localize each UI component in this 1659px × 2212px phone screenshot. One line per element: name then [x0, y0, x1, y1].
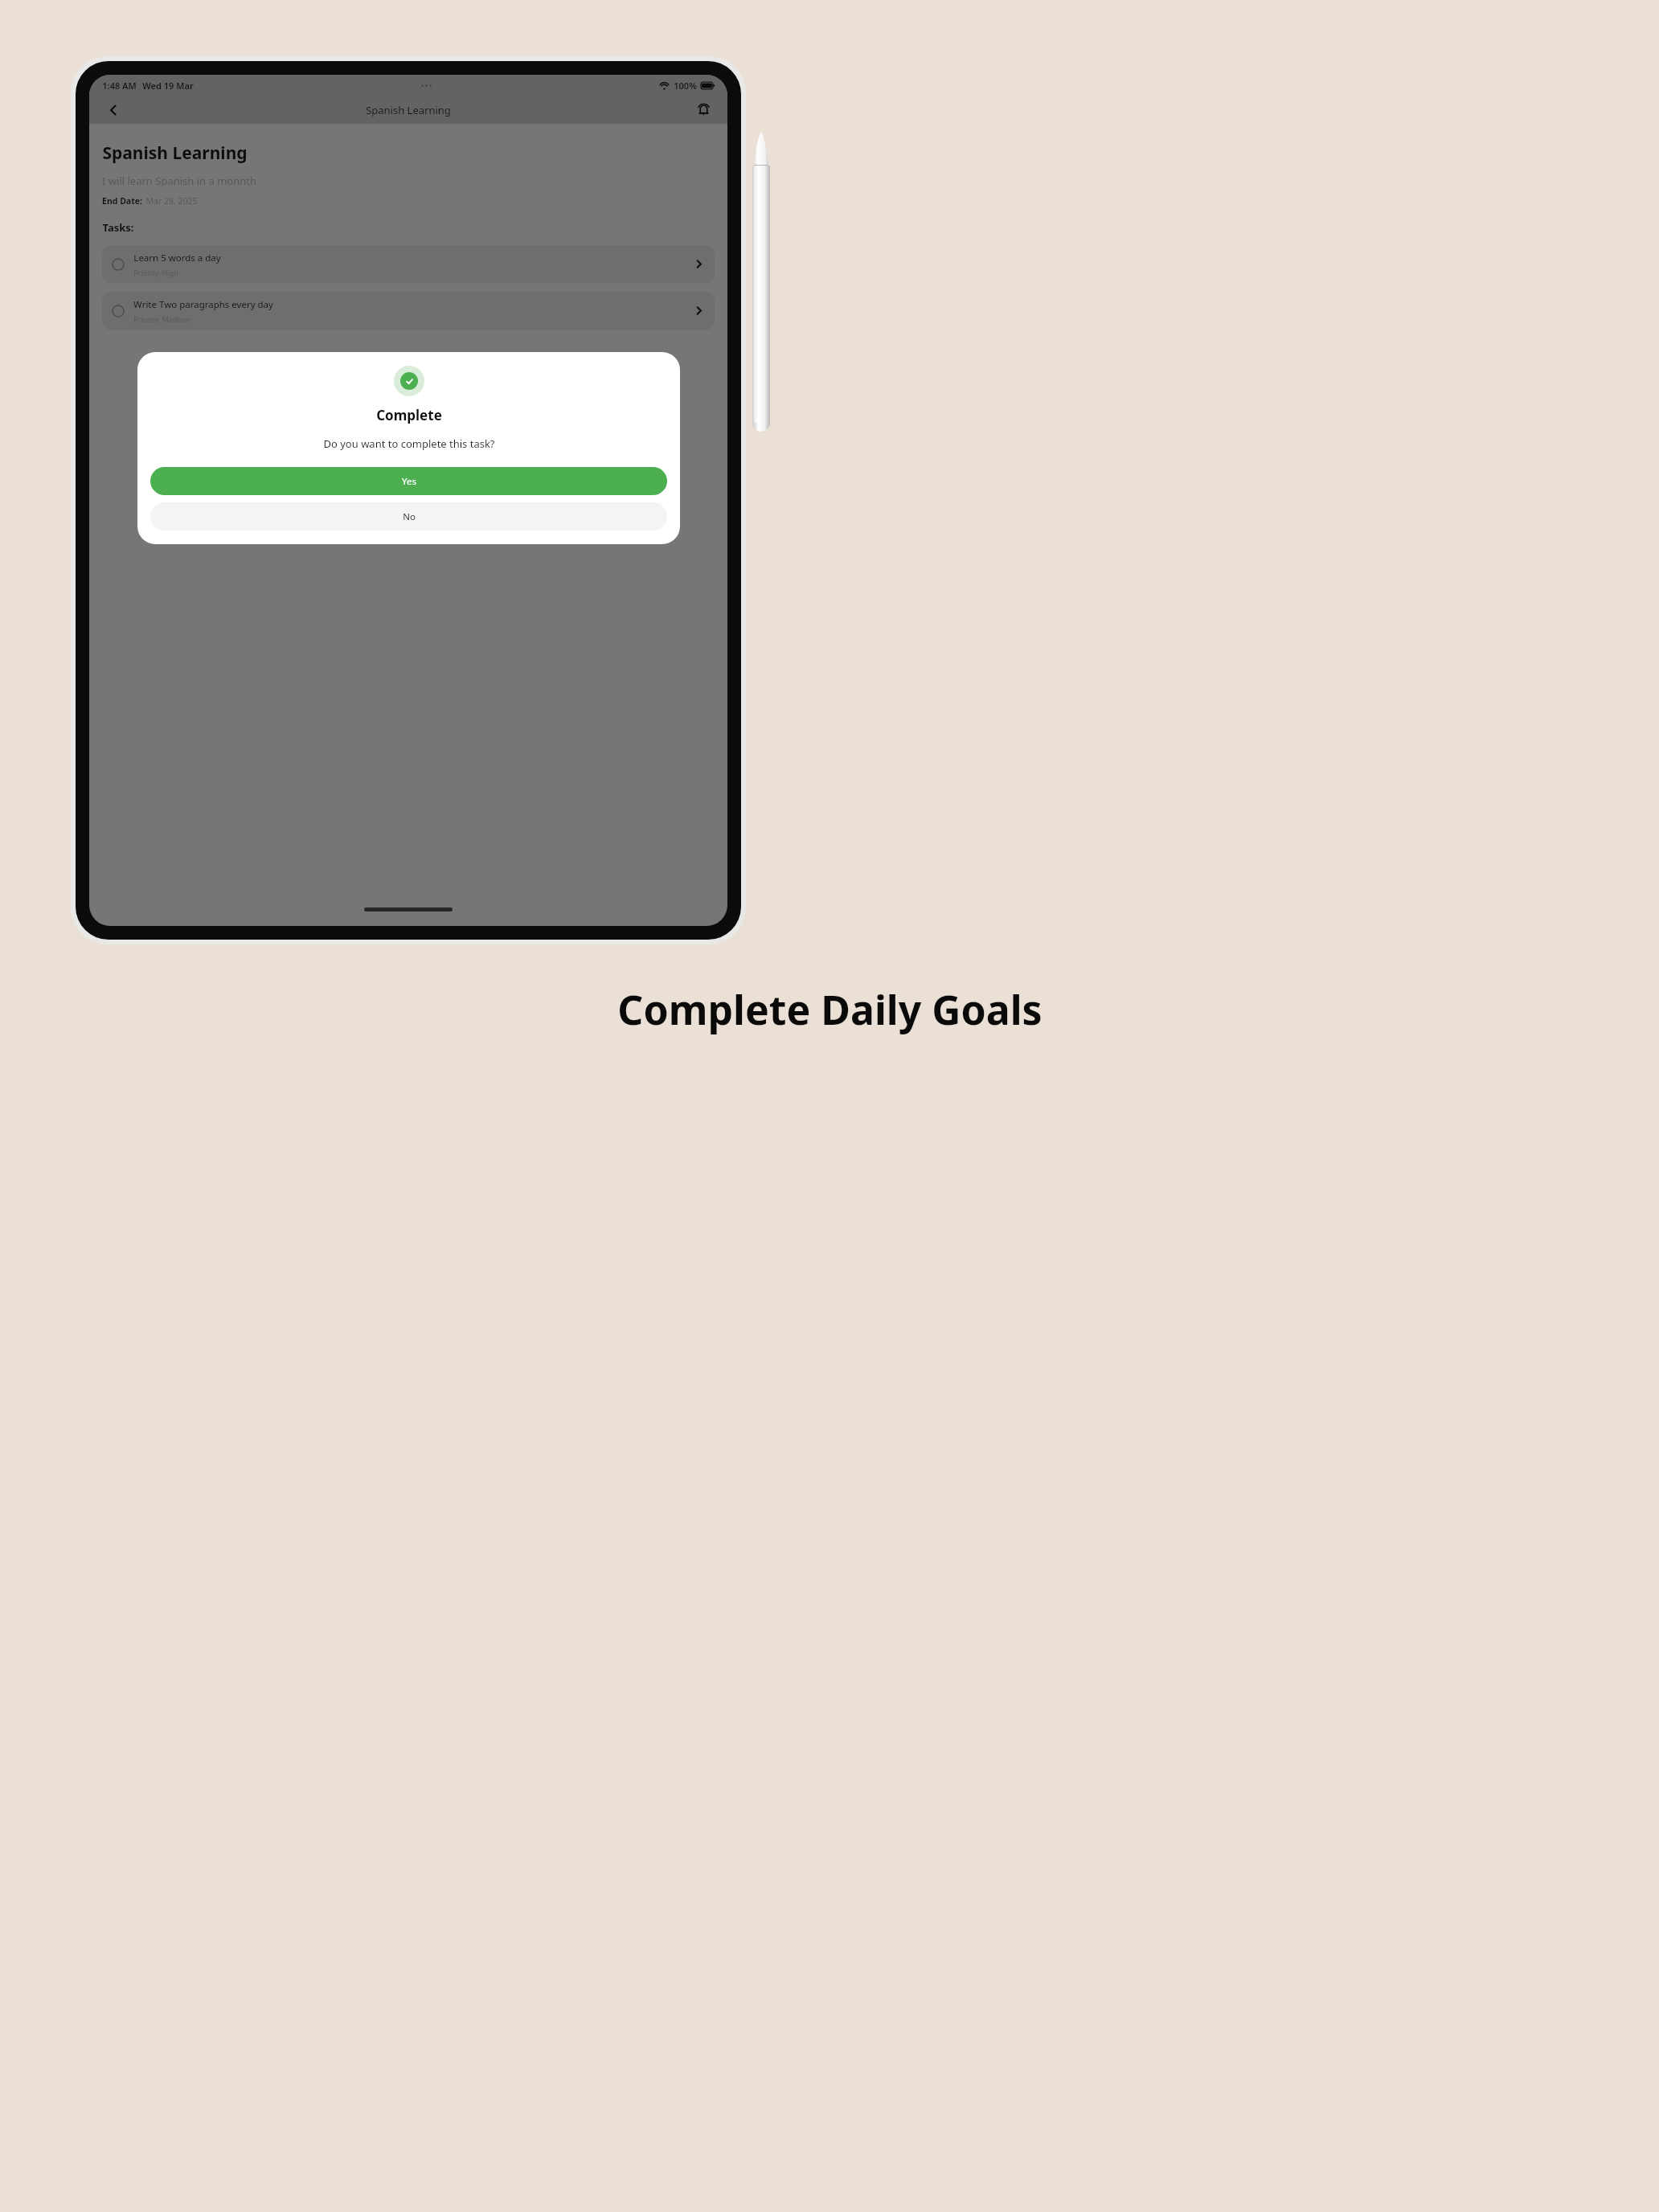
staticText: Priority: Medium [133, 314, 190, 324]
staticText: Complete Daily Goals [617, 982, 1043, 1037]
staticText: 1:48 AM [102, 80, 137, 92]
staticText: End Date: [102, 195, 142, 207]
staticText: Tasks: [102, 220, 134, 235]
staticText: No [403, 510, 416, 523]
staticText: 100% [674, 80, 697, 92]
staticText: Spanish Learning [366, 103, 451, 117]
button[interactable]: Yes [150, 467, 667, 495]
staticText: Wed 19 Mar [142, 80, 194, 92]
button[interactable]: No [150, 502, 667, 530]
staticText: Learn 5 words a day [133, 252, 221, 264]
button[interactable]: Write Two paragraphs every day [102, 292, 715, 330]
staticText: Write Two paragraphs every day [133, 298, 273, 311]
staticText: Complete [376, 406, 442, 424]
staticText: Do you want to complete this task? [323, 436, 495, 451]
button[interactable]: Back [100, 97, 126, 123]
button[interactable]: Notifications [690, 97, 716, 123]
staticText: Spanish Learning [102, 141, 248, 165]
staticText: Yes [402, 475, 416, 488]
staticText: Priority: High [133, 268, 178, 277]
staticText: I will learn Spanish in a monnth [102, 174, 256, 188]
staticText: Mar 28, 2025 [145, 195, 198, 207]
button[interactable]: Learn 5 words a day [102, 245, 715, 283]
